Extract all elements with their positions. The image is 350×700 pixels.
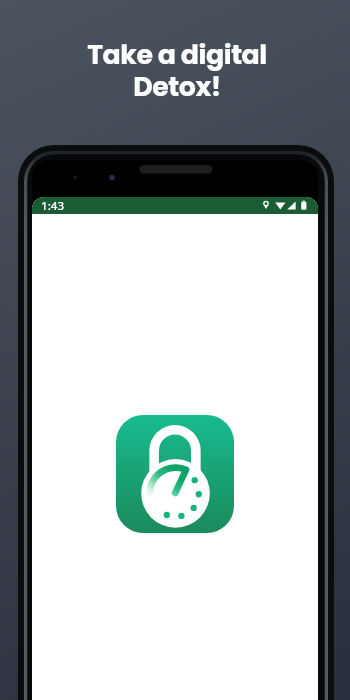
button[interactable]: Digital Detox app icon: [116, 415, 234, 533]
staticText: Take a digital Detox!: [87, 36, 267, 106]
staticText: 1:43: [41, 198, 65, 214]
